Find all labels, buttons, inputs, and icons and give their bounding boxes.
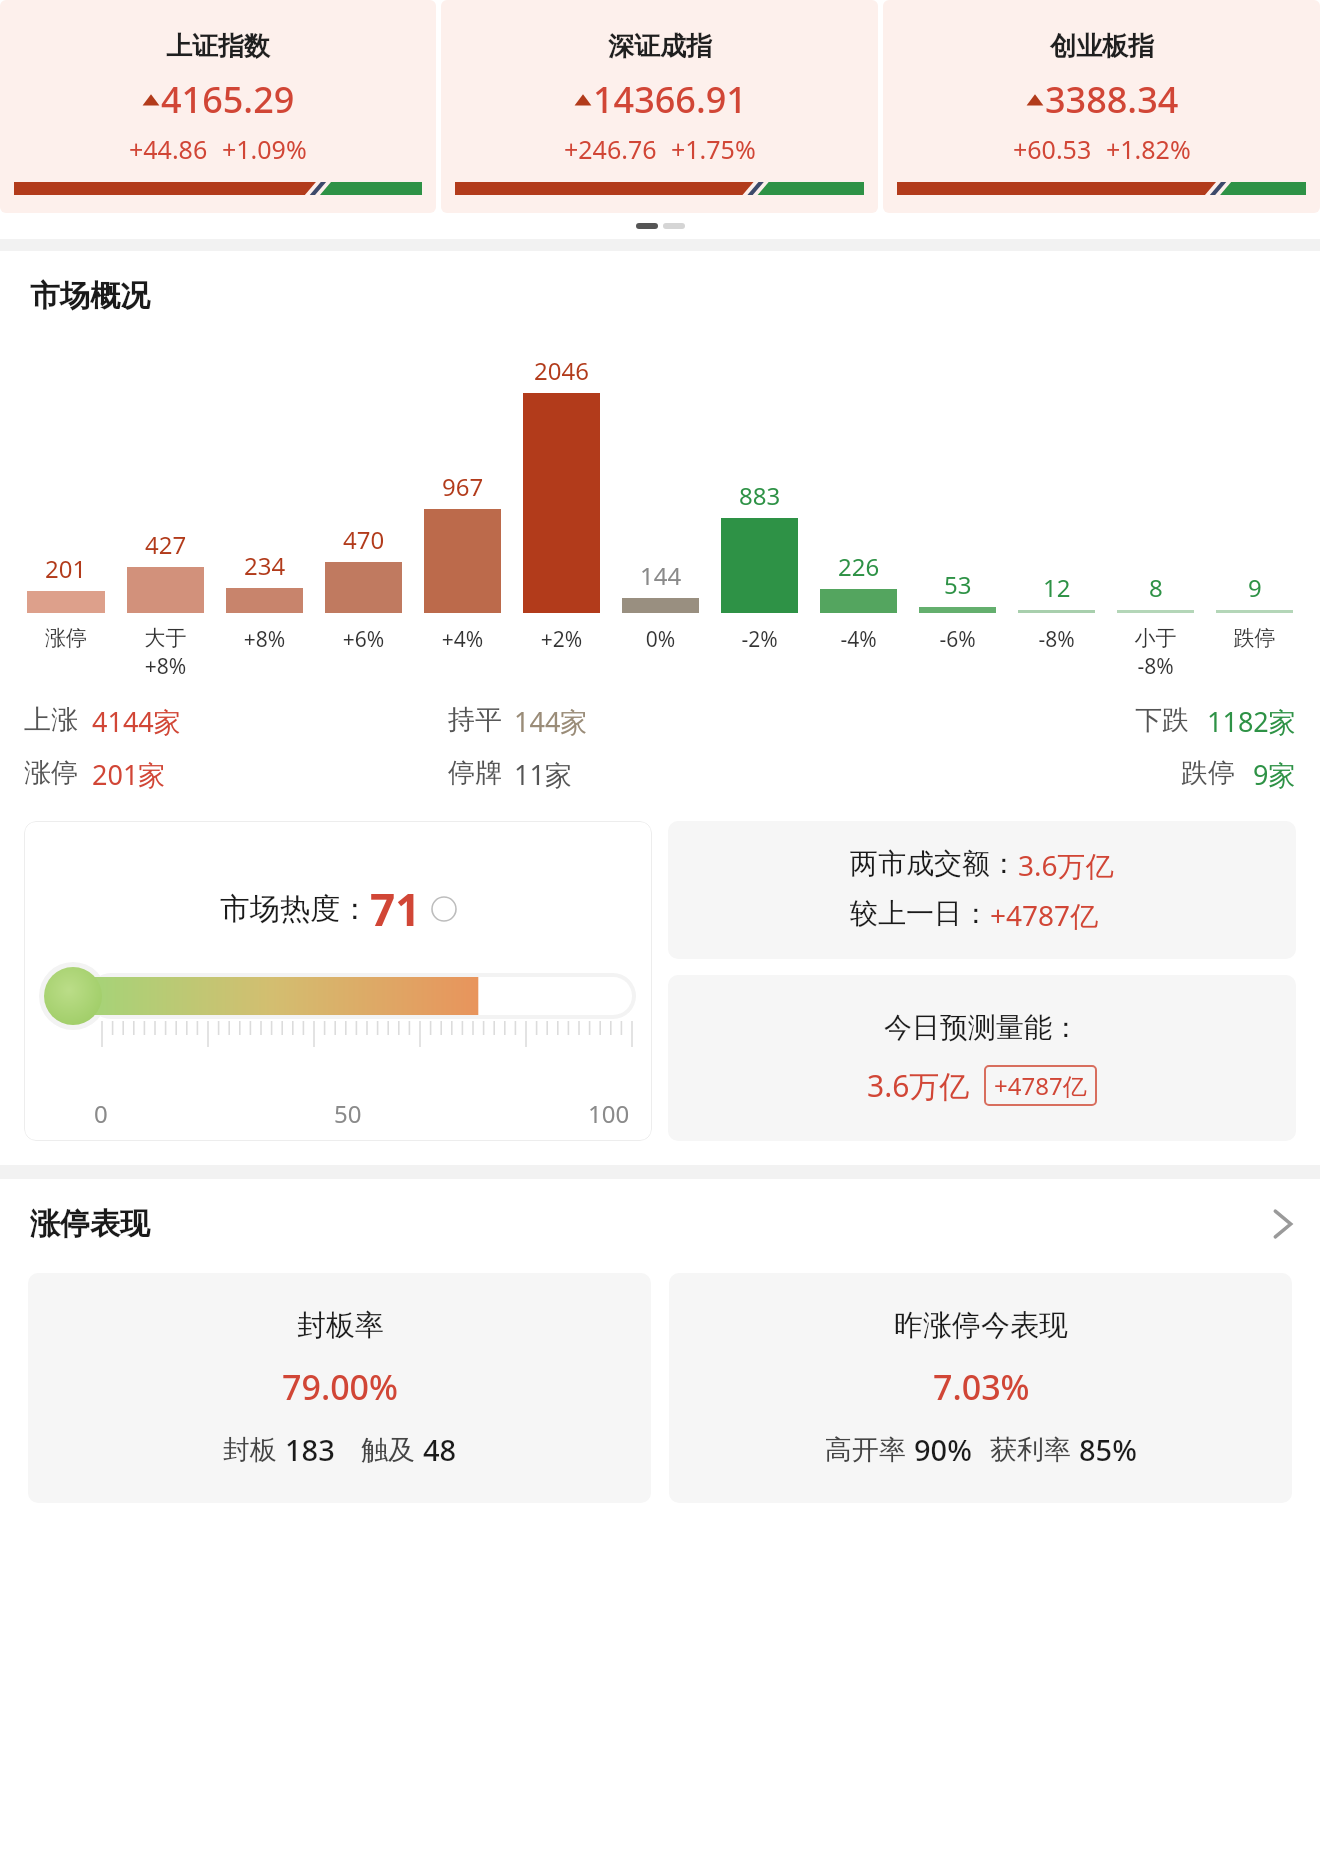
staticText: 0% [611,625,710,654]
staticText: 下跌 [1135,703,1189,737]
staticText: 涨停 [16,625,116,651]
staticText: 12 [1043,571,1071,604]
staticText: 跌停 [1181,756,1235,790]
staticText: 71 [370,879,421,939]
staticText: 90% [914,1430,972,1469]
staticText: 较上一日： [850,896,990,931]
staticText: +246.76 [564,132,657,166]
staticText: 85% [1079,1430,1137,1469]
staticText: 50 [334,1097,362,1130]
staticText: +1.09% [222,132,307,166]
staticText: 大于 +8% [116,625,215,681]
staticText: 持平 [448,703,502,737]
button[interactable]: 市场热度： [24,821,652,1141]
staticText: 3.6万亿 [1018,846,1114,884]
staticText: +1.82% [1106,132,1191,166]
staticText: +2% [512,625,611,654]
button[interactable]: 涨停表现 [0,1205,1320,1243]
staticText: 深证成指 [608,30,712,63]
button[interactable]: 上证指数 [0,0,436,213]
staticText: 183 [285,1430,335,1469]
staticText: +4% [413,625,512,654]
staticText: 创业板指 [1050,30,1154,63]
staticText: 封板 [223,1430,285,1467]
staticText: 4144家 [92,703,181,740]
staticText: -4% [809,625,908,654]
staticText: 53 [944,568,972,601]
staticText: 跌停 [1205,625,1304,651]
staticText: 470 [343,523,385,556]
staticText: +8% [215,625,314,654]
staticText: 7.03% [933,1364,1030,1410]
staticText: 234 [244,549,286,582]
staticText: 上证指数 [166,30,270,63]
staticText: -8% [1007,625,1106,654]
staticText: 两市成交额： [850,846,1018,881]
button[interactable]: 创业板指 [883,0,1320,213]
button[interactable]: 昨涨停今表现 [669,1273,1292,1503]
staticText: +4787亿 [990,896,1099,934]
staticText: 201家 [92,756,166,793]
staticText: +4787亿 [994,1069,1087,1102]
staticText: 上涨 [24,703,78,737]
staticText: 高开率 [825,1430,914,1467]
staticText: 涨停 [24,756,78,790]
staticText: 市场概况 [30,277,150,315]
staticText: 883 [739,479,781,512]
staticText: 昨涨停今表现 [894,1307,1068,1344]
button[interactable]: 今日预测量能： [668,975,1296,1141]
staticText: 201 [45,552,87,585]
staticText: 3.6万亿 [867,1065,970,1106]
staticText: 11家 [514,756,572,793]
staticText: 小于 -8% [1106,625,1205,681]
staticText: -2% [710,625,809,654]
staticText: 79.00% [282,1364,399,1410]
staticText: +1.75% [671,132,756,166]
staticText: 144家 [514,703,588,740]
staticText: 0 [94,1097,108,1130]
staticText: 14366.91 [593,75,747,124]
button[interactable]: 深证成指 [441,0,878,213]
staticText: 获利率 [990,1430,1079,1467]
staticText: 3388.34 [1045,75,1179,124]
staticText: 1182家 [1207,703,1296,740]
staticText: 市场热度： [220,890,370,928]
staticText: 967 [442,470,484,503]
staticText: 4165.29 [161,75,295,124]
staticText: +44.86 [129,132,208,166]
staticText: 144 [640,559,682,592]
staticText: 48 [423,1430,457,1469]
staticText: 9家 [1253,756,1296,793]
other: 说明 [431,896,457,922]
staticText: 今日预测量能： [884,1010,1080,1045]
staticText: 226 [838,550,880,583]
button[interactable]: 两市成交额： [668,821,1296,959]
staticText: 8 [1149,571,1163,604]
staticText: +6% [314,625,413,654]
staticText: 触及 [361,1430,423,1467]
staticText: -6% [908,625,1007,654]
staticText: +60.53 [1013,132,1092,166]
staticText: 2046 [534,354,589,387]
button[interactable]: 封板率 [28,1273,651,1503]
staticText: 9 [1248,571,1262,604]
staticText: 封板率 [297,1307,384,1344]
staticText: 100 [588,1097,630,1130]
staticText: 427 [145,528,187,561]
staticText: 涨停表现 [30,1205,150,1243]
staticText: 停牌 [448,756,502,790]
